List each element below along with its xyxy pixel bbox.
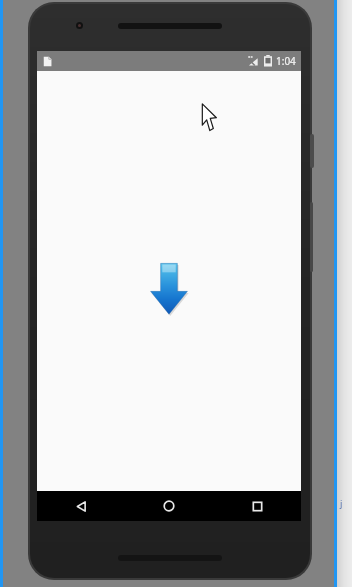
button[interactable]: Back xyxy=(37,491,125,521)
staticText: 1:04 xyxy=(276,54,296,68)
button[interactable]: Home xyxy=(125,491,213,521)
button[interactable]: Recent apps xyxy=(213,491,301,521)
staticText: j xyxy=(340,497,343,509)
button[interactable]: Download xyxy=(148,260,190,316)
